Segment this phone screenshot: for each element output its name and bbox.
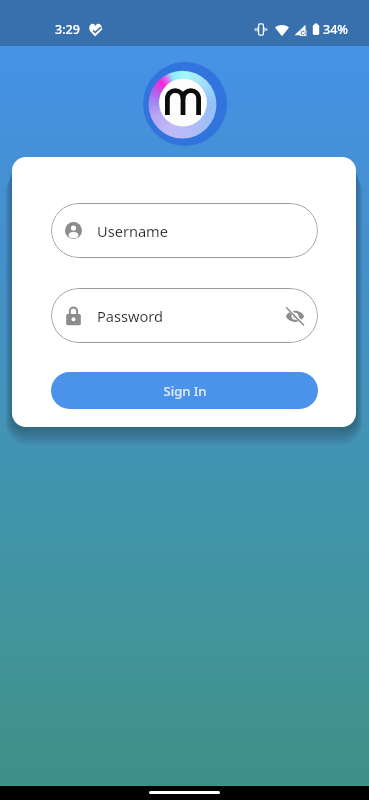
staticText: Sign In [163,382,207,400]
button[interactable]: Show password [285,304,305,328]
button[interactable]: Username [51,203,318,258]
staticText: Username [97,221,168,241]
staticText: 3:29 [55,21,80,38]
staticText: 34% [323,21,348,38]
button[interactable]: Sign In [51,372,318,409]
staticText: Password [97,306,164,326]
button[interactable]: Password [51,288,318,343]
